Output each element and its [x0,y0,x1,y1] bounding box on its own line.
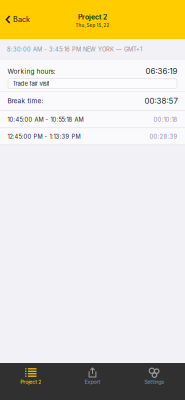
staticText: 8:30:00 AM - 3:45:16 PM NEW YORK — GMT+1 [7,46,142,53]
staticText: Break time: [7,97,43,105]
staticText: Back [13,15,30,24]
button[interactable]: Export [62,363,123,400]
staticText: Trade fair visit [12,80,49,87]
staticText: 00:28:39 [149,133,177,140]
staticText: 06:36:19 [145,66,177,76]
staticText: 12:45:00 PM - 1:13:39 PM [7,133,80,140]
staticText: 00:38:57 [144,96,177,106]
button[interactable]: Back [0,8,37,31]
button[interactable]: Project 2 [0,363,62,400]
staticText: Settings [144,378,164,385]
staticText: Thu, Sep 15, 22 [75,23,109,28]
staticText: Project 2 [78,13,107,21]
button[interactable]: Settings [123,363,185,400]
staticText: 00:10:18 [153,116,177,123]
staticText: Working hours: [7,67,55,75]
staticText: 10:45:00 AM - 10:55:18 AM [7,116,83,123]
staticText: Project 2 [20,378,41,385]
staticText: Export [84,378,100,385]
